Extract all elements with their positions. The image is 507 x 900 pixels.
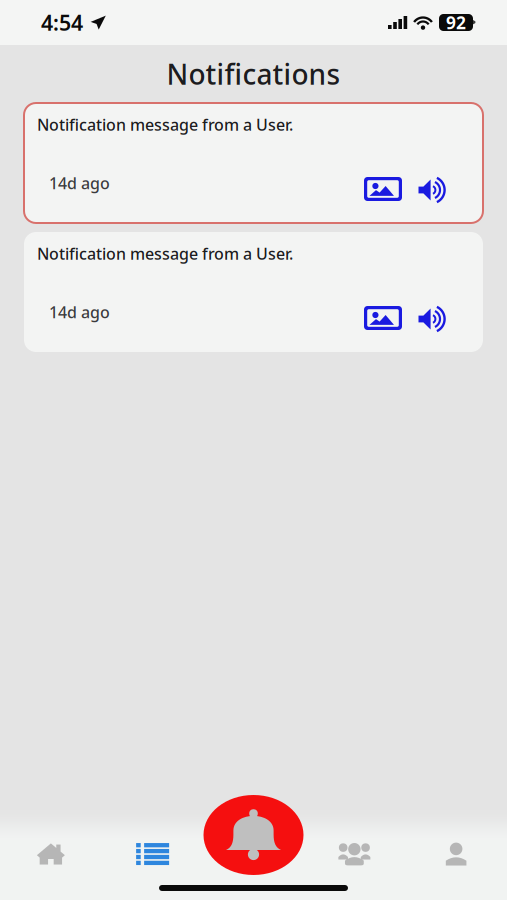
staticText: Notification message from a User. — [37, 114, 293, 135]
button[interactable]: View image — [364, 165, 402, 201]
button[interactable]: Groups — [303, 832, 405, 876]
staticText: Notifications — [166, 55, 340, 93]
button[interactable]: Profile — [405, 832, 507, 876]
button[interactable]: Play sound — [402, 294, 451, 330]
staticText: 4:54 — [41, 8, 83, 37]
staticText: Notification message from a User. — [37, 243, 293, 264]
staticText: 14d ago — [49, 172, 110, 194]
button[interactable]: Feed — [102, 832, 204, 876]
button[interactable]: View image — [364, 294, 402, 330]
button[interactable]: Home — [0, 832, 102, 876]
staticText: 92 — [446, 11, 466, 34]
button[interactable]: Notifications — [203, 795, 303, 875]
button[interactable]: Play sound — [402, 165, 451, 201]
staticText: 14d ago — [49, 301, 110, 323]
